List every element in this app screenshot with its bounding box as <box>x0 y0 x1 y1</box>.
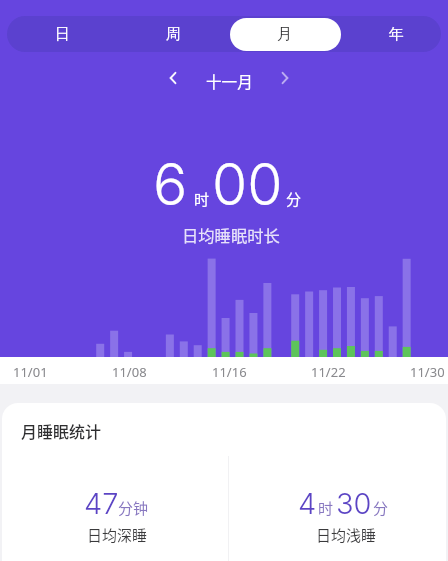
staticText: 11/16 <box>212 363 247 381</box>
button[interactable]: Next month <box>269 62 301 94</box>
staticText: 11/01 <box>13 363 48 381</box>
button[interactable]: 年 <box>341 16 448 52</box>
button[interactable] <box>229 480 446 550</box>
staticText: 11/08 <box>112 363 147 381</box>
staticText: 日 <box>55 25 70 44</box>
button[interactable]: 月 <box>229 16 340 52</box>
staticText: 47 <box>84 486 119 521</box>
staticText: 11/22 <box>311 363 346 381</box>
staticText: 时 <box>194 188 210 210</box>
staticText: 月 <box>277 25 292 44</box>
staticText: 6 <box>153 150 188 219</box>
button[interactable]: 日 <box>7 16 118 52</box>
staticText: 11/30 <box>410 363 445 381</box>
staticText: 分 <box>373 497 389 519</box>
staticText: 日均睡眠时长 <box>182 223 280 247</box>
staticText: 周 <box>166 25 181 44</box>
staticText: 十一月 <box>206 70 253 93</box>
staticText: 分 <box>286 188 302 210</box>
button[interactable]: 周 <box>118 16 229 52</box>
button[interactable]: Previous month <box>157 62 189 94</box>
staticText: 日均浅睡 <box>316 524 377 546</box>
staticText: 年 <box>389 25 404 44</box>
button[interactable] <box>2 480 228 550</box>
staticText: 分钟 <box>118 497 149 519</box>
staticText: 4 <box>298 486 317 521</box>
staticText: 00 <box>212 150 283 219</box>
staticText: 月睡眠统计 <box>21 419 102 442</box>
staticText: 日均深睡 <box>87 524 148 546</box>
staticText: 30 <box>336 486 372 521</box>
staticText: 时 <box>318 497 334 519</box>
